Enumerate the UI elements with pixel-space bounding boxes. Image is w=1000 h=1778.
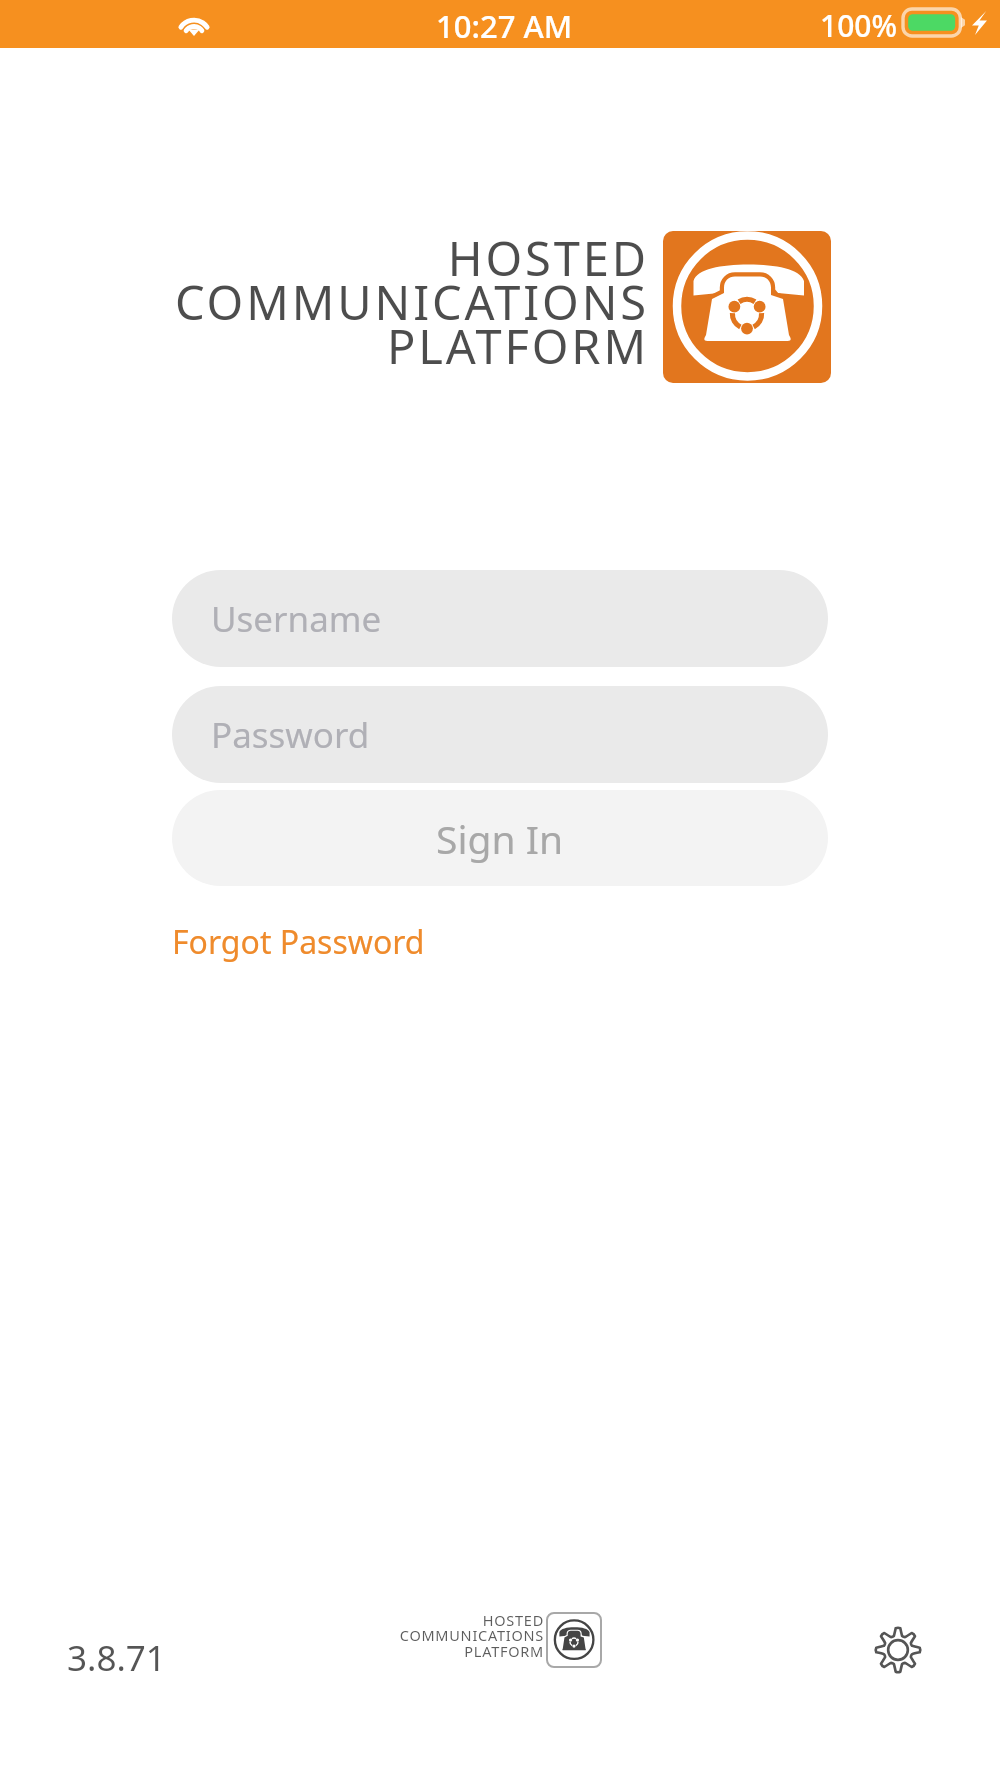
staticText: 100% [820, 5, 898, 46]
button[interactable]: Forgot Password [172, 920, 425, 964]
staticText: Forgot Password [172, 920, 425, 964]
staticText: 3.8.71 [67, 1634, 166, 1682]
button[interactable]: Settings [869, 1621, 927, 1679]
staticText: HOSTED COMMUNICATIONS PLATFORM [104, 226, 649, 378]
button[interactable]: Sign In [172, 790, 828, 886]
staticText: Password [211, 711, 370, 759]
staticText: Username [211, 595, 382, 643]
staticText: Sign In [436, 812, 564, 865]
staticText: 10:27 AM [436, 5, 573, 47]
button[interactable]: Username [172, 570, 828, 667]
staticText: HOSTED COMMUNICATIONS PLATFORM [328, 1610, 544, 1662]
button[interactable]: Password [172, 686, 828, 783]
